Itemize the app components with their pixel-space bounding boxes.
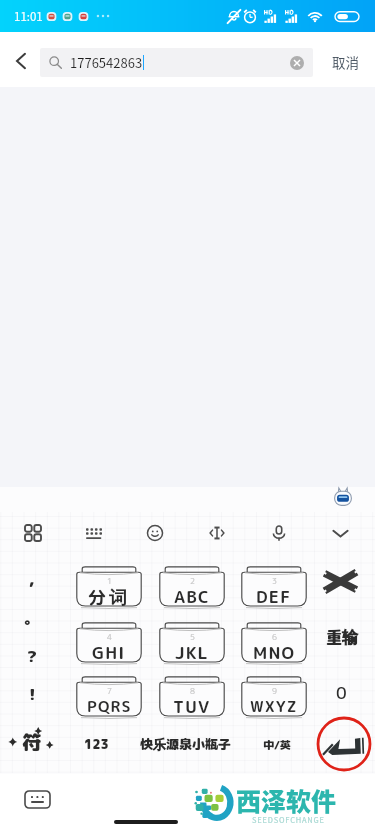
staticText: 重输 — [326, 626, 359, 648]
button[interactable]: 1 — [68, 556, 142, 608]
button[interactable]: Switch input method — [24, 790, 51, 809]
staticText: 3 — [272, 575, 277, 586]
staticText: 西泽软件 — [236, 782, 337, 818]
button[interactable]: Cursor control — [195, 511, 239, 555]
staticText: TUV — [173, 695, 211, 717]
button[interactable]: ? — [10, 637, 54, 675]
staticText: 11:01 — [14, 8, 43, 25]
button[interactable]: , — [10, 560, 54, 598]
button[interactable]: 123 — [74, 724, 118, 764]
button[interactable]: More panels — [11, 511, 55, 555]
staticText: 6 — [272, 631, 277, 642]
staticText: 0 — [336, 681, 347, 705]
button[interactable]: Hide keyboard — [318, 511, 362, 555]
button[interactable]: 1776542863 — [40, 48, 313, 77]
button[interactable]: 6 — [233, 612, 307, 664]
staticText: 中/英 — [263, 737, 291, 752]
button[interactable]: 2 — [151, 556, 225, 608]
button[interactable]: Assistant — [332, 486, 354, 508]
staticText: 取消 — [332, 52, 359, 72]
staticText: 2 — [190, 575, 195, 586]
staticText: JKL — [175, 641, 209, 663]
staticText: 123 — [84, 736, 109, 753]
staticText: , — [29, 569, 35, 590]
staticText: ? — [27, 646, 37, 667]
button[interactable]: 3 — [233, 556, 307, 608]
staticText: 9 — [272, 685, 277, 696]
button[interactable]: Delete — [318, 559, 362, 603]
button[interactable]: 8 — [151, 666, 225, 718]
button[interactable]: 4 — [68, 612, 142, 664]
staticText: 1 — [107, 575, 112, 586]
button[interactable]: 中/英 — [255, 724, 299, 764]
button[interactable]: Keyboard layout — [72, 511, 116, 555]
button[interactable]: 快乐源泉小瓶子 — [126, 722, 246, 766]
staticText: WXYZ — [250, 695, 298, 717]
staticText: 8 — [190, 685, 195, 696]
staticText: 。 — [24, 608, 40, 629]
staticText: ABC — [174, 585, 211, 607]
staticText: 5 — [190, 631, 195, 642]
staticText: 分词 — [88, 585, 130, 607]
button[interactable]: 取消 — [317, 44, 373, 80]
staticText: SEEDSOFCHANGE — [252, 814, 325, 825]
button[interactable]: 0 — [319, 673, 363, 713]
button[interactable]: 重输 — [316, 617, 368, 657]
staticText: PQRS — [87, 695, 132, 717]
staticText: 7 — [107, 685, 112, 696]
button[interactable]: Back — [2, 42, 40, 80]
staticText: GHI — [92, 641, 126, 663]
button[interactable]: Voice input — [257, 511, 301, 555]
button[interactable]: 符 — [6, 718, 58, 766]
button[interactable]: Enter — [314, 714, 374, 774]
button[interactable]: ! — [10, 675, 54, 713]
button[interactable]: 9 — [233, 666, 307, 718]
staticText: 快乐源泉小瓶子 — [140, 735, 232, 753]
button[interactable]: Emoji — [133, 511, 177, 555]
staticText: MNO — [253, 641, 296, 663]
button[interactable]: 5 — [151, 612, 225, 664]
staticText: ! — [29, 684, 36, 705]
button[interactable]: 7 — [68, 666, 142, 718]
staticText: 1776542863 — [70, 53, 143, 72]
button[interactable]: 。 — [10, 599, 54, 637]
button[interactable]: Clear text — [290, 56, 304, 70]
staticText: DEF — [256, 585, 292, 607]
staticText: 符 — [22, 729, 42, 756]
staticText: 4 — [107, 631, 112, 642]
